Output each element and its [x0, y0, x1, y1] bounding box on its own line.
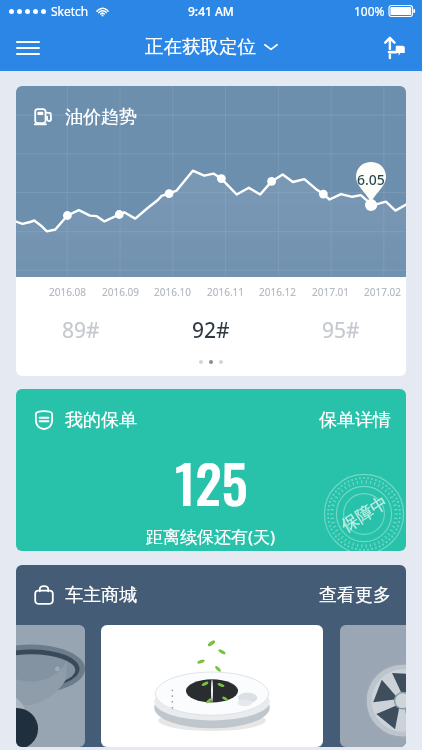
staticText: 89# [62, 316, 100, 345]
staticText: 2016.11 [207, 285, 244, 299]
staticText: 6.05 [357, 170, 385, 189]
button[interactable]: 正在获取定位 [139, 29, 284, 64]
staticText: 100% [354, 3, 385, 19]
button[interactable]: 查看更多 [315, 580, 395, 611]
button[interactable]: 保单详情 [315, 405, 395, 436]
button[interactable]: Menu [6, 25, 50, 69]
button[interactable]: 6.05 [16, 86, 406, 376]
staticText: 我的保单 [65, 409, 137, 432]
staticText: 2016.10 [154, 285, 191, 299]
staticText: 92# [192, 316, 230, 345]
staticText: 2017.01 [312, 285, 349, 299]
staticText: Sketch [51, 3, 89, 19]
staticText: 油价趋势 [65, 106, 137, 129]
button[interactable] [340, 625, 406, 747]
staticText: 9:41 AM [188, 3, 234, 19]
staticText: 95# [322, 316, 360, 345]
staticText: 125 [175, 443, 248, 522]
staticText: 保障中 [337, 492, 392, 536]
button[interactable]: Share [372, 25, 416, 69]
button[interactable] [16, 625, 85, 747]
staticText: 距离续保还有(天) [146, 525, 276, 548]
button[interactable]: 车主商城 [16, 565, 406, 747]
button[interactable]: 保障中 [16, 389, 406, 551]
staticText: 2017.02 [364, 285, 401, 299]
staticText: 车主商城 [65, 584, 137, 607]
button[interactable] [101, 625, 323, 747]
staticText: 2016.08 [49, 285, 86, 299]
staticText: 2016.09 [102, 285, 139, 299]
staticText: 2016.12 [259, 285, 296, 299]
staticText: 正在获取定位 [145, 35, 256, 58]
